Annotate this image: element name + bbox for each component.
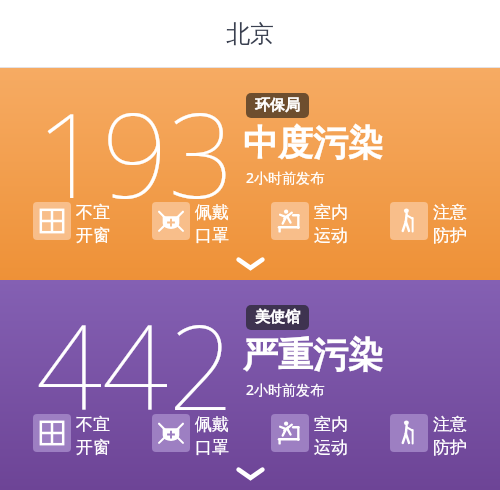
staticText: 注意 [433,202,467,223]
button[interactable]: 不宜开窗 [33,414,110,458]
staticText: 193 [36,74,235,232]
staticText: 室内 [314,202,348,223]
button[interactable]: 193 [0,68,500,280]
staticText: 防护 [433,225,467,246]
button[interactable]: 佩戴口罩 [152,202,229,246]
staticText: 严重污染 [243,333,383,377]
staticText: 佩戴 [195,414,229,435]
button[interactable]: 室内运动 [271,202,348,246]
staticText: 开窗 [76,437,110,458]
staticText: 室内 [314,414,348,435]
button[interactable]: 美使馆 [246,305,309,330]
staticText: 北京 [226,19,274,49]
staticText: 口罩 [195,225,229,246]
staticText: 环保局 [255,96,300,115]
staticText: 佩戴 [195,202,229,223]
button[interactable]: Expand details [228,462,272,484]
button[interactable]: 442 [0,280,500,490]
staticText: 运动 [314,225,348,246]
button[interactable]: Expand details [228,252,272,274]
staticText: 不宜 [76,414,110,435]
staticText: 开窗 [76,225,110,246]
button[interactable]: 佩戴口罩 [152,414,229,458]
button[interactable]: 不宜开窗 [33,202,110,246]
button[interactable]: 注意防护 [390,202,467,246]
button[interactable]: 注意防护 [390,414,467,458]
staticText: 2小时前发布 [246,380,325,399]
button[interactable]: 室内运动 [271,414,348,458]
staticText: 2小时前发布 [246,168,325,187]
staticText: 运动 [314,437,348,458]
staticText: 442 [36,286,235,444]
staticText: 注意 [433,414,467,435]
staticText: 口罩 [195,437,229,458]
staticText: 防护 [433,437,467,458]
staticText: 美使馆 [255,308,300,327]
button[interactable]: 环保局 [246,93,309,118]
staticText: 不宜 [76,202,110,223]
staticText: 中度污染 [243,121,383,165]
